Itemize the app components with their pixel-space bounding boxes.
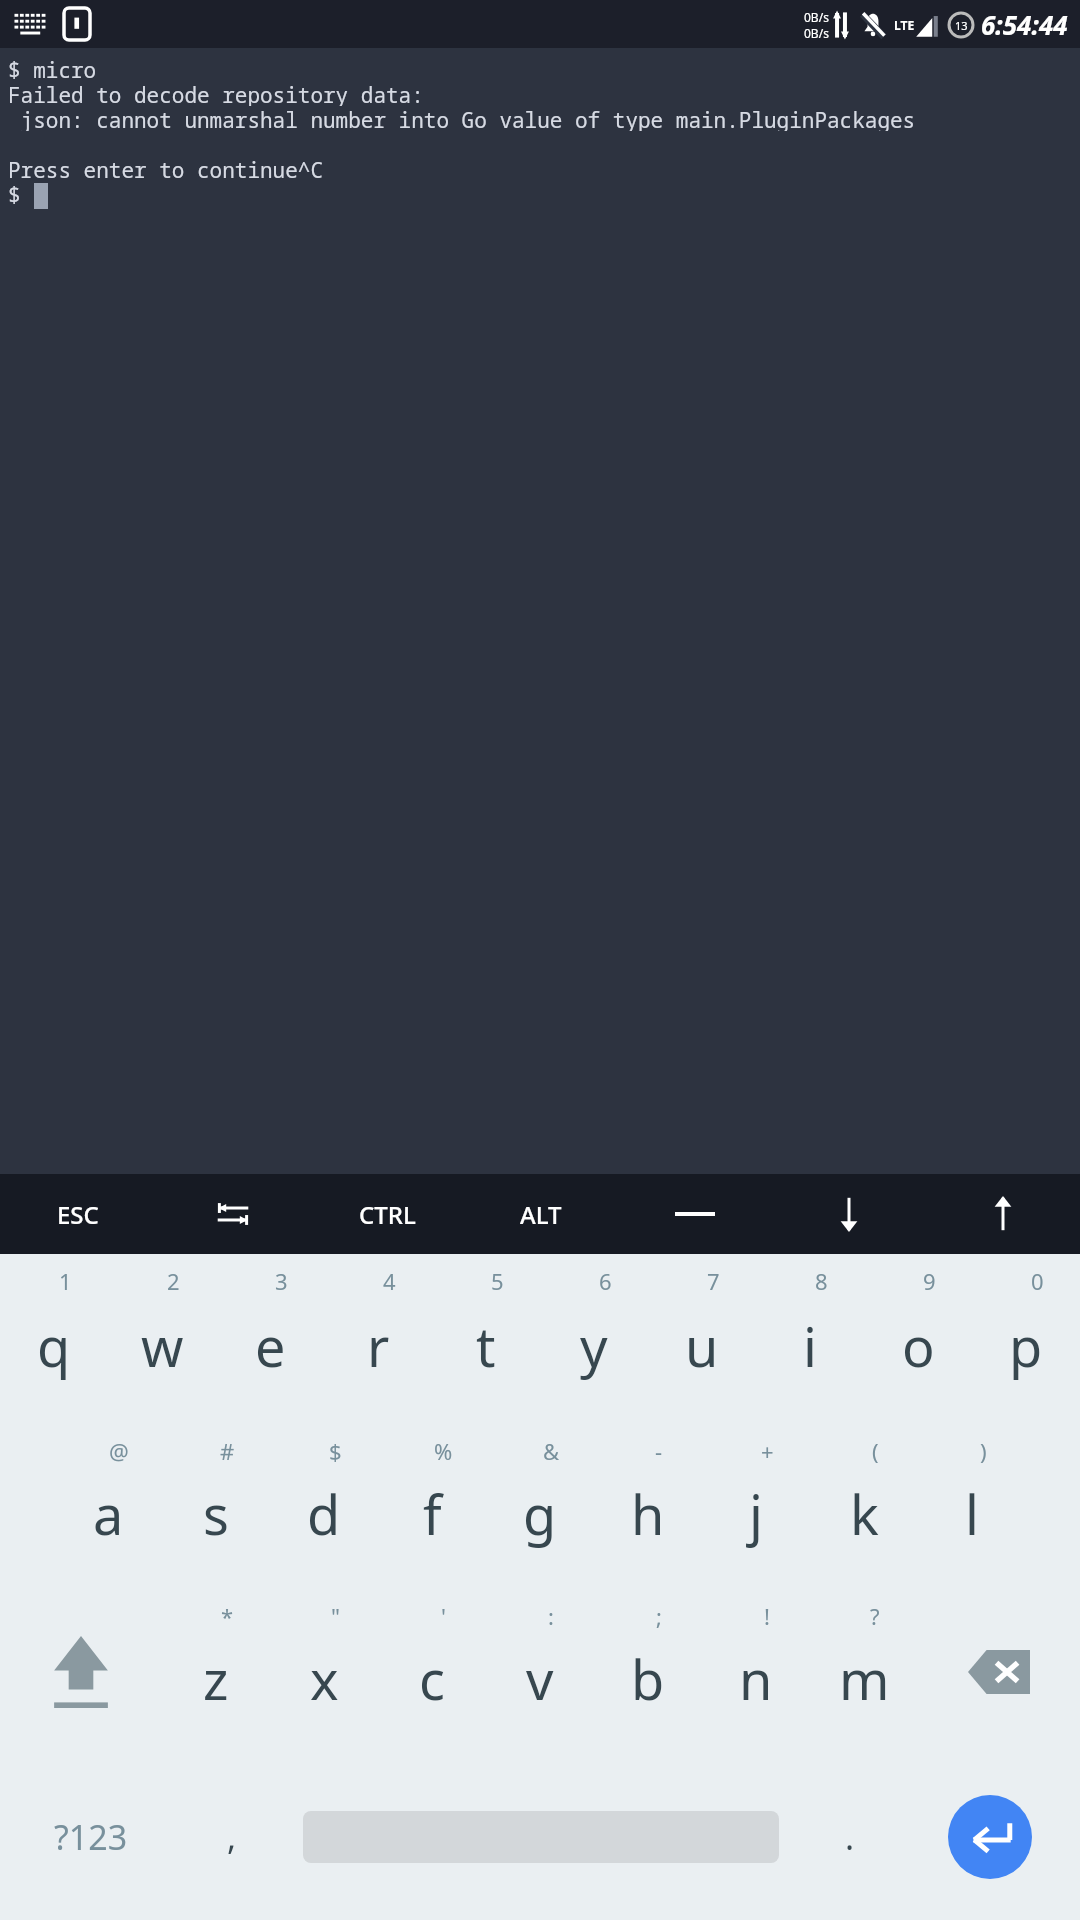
button[interactable]: UP	[926, 1174, 1080, 1254]
button[interactable]: ESC	[0, 1174, 155, 1254]
staticText: c	[419, 1642, 445, 1716]
staticText: $ micro	[8, 56, 97, 81]
staticText: 5	[491, 1266, 504, 1296]
button[interactable]: +	[702, 1424, 810, 1589]
staticText: a	[93, 1477, 124, 1551]
staticText: j	[749, 1477, 763, 1551]
button[interactable]: DASH	[618, 1174, 772, 1254]
button[interactable]: ,	[181, 1754, 282, 1920]
staticText: ?123	[54, 1814, 128, 1860]
button[interactable]: .	[799, 1754, 900, 1920]
staticText: Failed to decode repository data:	[8, 81, 424, 106]
button[interactable]: 4	[324, 1254, 432, 1424]
button[interactable]: (	[810, 1424, 918, 1589]
button[interactable]: 9	[864, 1254, 972, 1424]
staticText: @	[109, 1436, 129, 1466]
staticText: $	[8, 181, 34, 210]
button[interactable]: Shift	[0, 1589, 162, 1754]
staticText: z	[203, 1642, 229, 1716]
staticText: )	[980, 1436, 987, 1466]
staticText: json: cannot unmarshal number into Go va…	[8, 106, 916, 131]
staticText: v	[526, 1642, 554, 1716]
staticText: #	[220, 1436, 235, 1466]
staticText: LTE	[894, 17, 915, 33]
button[interactable]: $	[270, 1424, 378, 1589]
button[interactable]: ?	[810, 1589, 918, 1754]
button[interactable]: Enter	[900, 1754, 1080, 1920]
staticText: '	[441, 1601, 446, 1631]
staticText: 9	[923, 1266, 936, 1296]
staticText: 7	[707, 1266, 720, 1296]
button[interactable]: '	[378, 1589, 486, 1754]
staticText: 4	[383, 1266, 396, 1296]
button[interactable]: "	[270, 1589, 378, 1754]
button[interactable]: ;	[594, 1589, 702, 1754]
staticText: .	[845, 1814, 855, 1860]
button[interactable]: 1	[0, 1254, 108, 1424]
button[interactable]: 3	[216, 1254, 324, 1424]
staticText: l	[965, 1477, 979, 1551]
staticText: q	[37, 1309, 71, 1383]
staticText: %	[434, 1436, 453, 1466]
button[interactable]: )	[918, 1424, 1026, 1589]
staticText: h	[631, 1477, 665, 1551]
button[interactable]: :	[486, 1589, 594, 1754]
staticText: s	[203, 1477, 229, 1551]
staticText: u	[685, 1309, 719, 1383]
staticText: -	[655, 1436, 663, 1466]
staticText: t	[476, 1309, 496, 1383]
button[interactable]: 8	[756, 1254, 864, 1424]
staticText: i	[803, 1309, 817, 1383]
staticText: CTRL	[359, 1198, 416, 1231]
button[interactable]: %	[378, 1424, 486, 1589]
staticText: 13	[955, 18, 968, 33]
staticText: 3	[275, 1266, 288, 1296]
staticText: b	[631, 1642, 665, 1716]
staticText: 0	[1031, 1266, 1044, 1296]
button[interactable]: ALT	[464, 1174, 618, 1254]
staticText: 1	[59, 1266, 72, 1296]
staticText: ?	[870, 1601, 880, 1631]
staticText: 2	[167, 1266, 180, 1296]
button[interactable]: @	[54, 1424, 162, 1589]
staticText: ALT	[520, 1198, 562, 1231]
button[interactable]: Backspace	[918, 1589, 1080, 1754]
staticText: ESC	[57, 1198, 99, 1231]
staticText: 6	[599, 1266, 612, 1296]
button[interactable]: 5	[432, 1254, 540, 1424]
staticText: ,	[227, 1814, 237, 1860]
staticText: &	[543, 1436, 560, 1466]
staticText: :	[548, 1601, 554, 1631]
button[interactable]: 2	[108, 1254, 216, 1424]
staticText: *	[221, 1601, 234, 1631]
staticText: 0B/s	[804, 25, 829, 41]
staticText: ;	[656, 1601, 662, 1631]
button[interactable]: CTRL	[310, 1174, 464, 1254]
staticText: o	[902, 1309, 935, 1383]
button[interactable]: 6	[540, 1254, 648, 1424]
staticText: m	[839, 1642, 890, 1716]
staticText: y	[580, 1309, 608, 1383]
staticText: r	[367, 1309, 390, 1383]
staticText: g	[523, 1477, 557, 1551]
button[interactable]: #	[162, 1424, 270, 1589]
staticText: +	[761, 1436, 774, 1466]
button[interactable]: 0	[972, 1254, 1080, 1424]
staticText: !	[764, 1601, 770, 1631]
staticText: 6:54:44	[981, 7, 1068, 42]
staticText: "	[331, 1601, 340, 1631]
button[interactable]: *	[162, 1589, 270, 1754]
button[interactable]: &	[486, 1424, 594, 1589]
staticText: 8	[815, 1266, 828, 1296]
staticText: $	[329, 1436, 342, 1466]
button[interactable]: 7	[648, 1254, 756, 1424]
button[interactable]: Space	[282, 1754, 799, 1920]
staticText: k	[850, 1477, 879, 1551]
staticText: n	[739, 1642, 773, 1716]
staticText: e	[255, 1309, 286, 1383]
button[interactable]: TAB	[155, 1174, 310, 1254]
button[interactable]: DOWN	[772, 1174, 926, 1254]
button[interactable]: !	[702, 1589, 810, 1754]
button[interactable]: -	[594, 1424, 702, 1589]
button[interactable]: ?123	[0, 1754, 181, 1920]
